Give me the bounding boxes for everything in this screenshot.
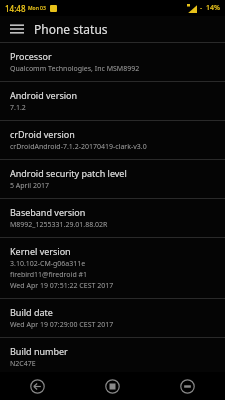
button[interactable]: Baseband version bbox=[0, 199, 225, 237]
staticText: Build number bbox=[10, 345, 68, 357]
button[interactable]: crDroid version bbox=[0, 121, 225, 159]
staticText: crDroidAndroid-7.1.2-20170419-clark-v3.0 bbox=[10, 142, 147, 152]
staticText: 7.1.2 bbox=[10, 103, 26, 113]
button[interactable]: Home bbox=[75, 372, 150, 400]
staticText: 5 April 2017 bbox=[10, 181, 49, 191]
staticText: 14% bbox=[206, 3, 220, 13]
staticText: Phone status bbox=[34, 21, 108, 37]
staticText: Processor bbox=[10, 50, 52, 62]
staticText: Build date bbox=[10, 306, 53, 318]
button[interactable]: Kernel version bbox=[0, 238, 225, 298]
button[interactable]: Recent apps bbox=[150, 372, 225, 400]
staticText: Wed Apr 19 07:51:22 CEST 2017 bbox=[10, 281, 114, 291]
button[interactable]: Build date bbox=[0, 299, 225, 337]
staticText: Baseband version bbox=[10, 206, 86, 218]
staticText: N2C47E bbox=[10, 359, 36, 366]
staticText: firebird11@firedroid #1 bbox=[10, 270, 88, 280]
staticText: 3.10.102-CM-g06a311e bbox=[10, 259, 86, 269]
staticText: Android version bbox=[10, 89, 78, 101]
staticText: Mon 03 bbox=[28, 5, 46, 12]
staticText: Wed Apr 19 07:29:00 CEST 2017 bbox=[10, 320, 114, 330]
button[interactable]: Build number bbox=[0, 338, 225, 372]
staticText: - bbox=[200, 3, 203, 13]
button[interactable]: Back bbox=[0, 372, 75, 400]
staticText: M8992_1255331.29.01.88.02R bbox=[10, 220, 108, 230]
staticText: Android security patch level bbox=[10, 167, 127, 179]
button[interactable]: Android security patch level bbox=[0, 160, 225, 198]
staticText: 14:48 bbox=[5, 3, 26, 14]
staticText: crDroid version bbox=[10, 128, 75, 140]
button[interactable]: Android version bbox=[0, 82, 225, 120]
staticText: Kernel version bbox=[10, 245, 71, 257]
button[interactable]: Open navigation menu bbox=[0, 16, 34, 42]
button[interactable]: Processor bbox=[0, 43, 225, 81]
staticText: Qualcomm Technologies, Inc MSM8992 bbox=[10, 64, 140, 74]
